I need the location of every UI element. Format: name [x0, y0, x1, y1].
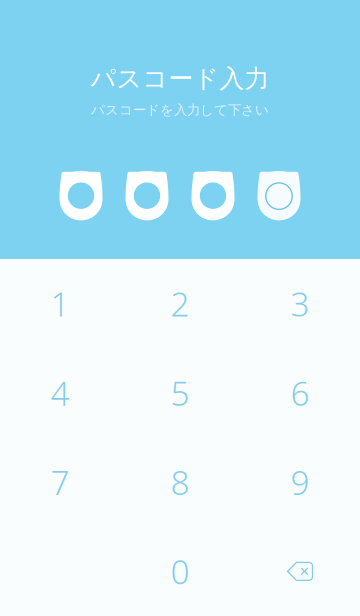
staticText: 4: [50, 371, 69, 415]
staticText: パスコード入力: [90, 63, 269, 94]
button[interactable]: 2: [120, 259, 240, 348]
button[interactable]: 3: [240, 259, 360, 348]
staticText: 2: [170, 281, 189, 326]
staticText: 3: [290, 281, 309, 326]
button[interactable]: 9: [240, 437, 360, 527]
staticText: 0: [170, 549, 189, 593]
staticText: 5: [170, 371, 189, 415]
button[interactable]: 5: [120, 348, 240, 437]
button[interactable]: 1: [0, 259, 120, 348]
button[interactable]: 7: [0, 437, 120, 527]
staticText: 1: [50, 281, 69, 326]
button[interactable]: Delete: [240, 527, 360, 616]
staticText: 8: [170, 460, 189, 504]
staticText: 6: [290, 371, 309, 415]
button[interactable]: 8: [120, 437, 240, 527]
button[interactable]: 6: [240, 348, 360, 437]
staticText: 9: [290, 460, 309, 504]
staticText: 7: [50, 460, 69, 504]
button[interactable]: 4: [0, 348, 120, 437]
staticText: パスコードを入力して下さい: [91, 101, 269, 118]
button[interactable]: 0: [120, 527, 240, 616]
